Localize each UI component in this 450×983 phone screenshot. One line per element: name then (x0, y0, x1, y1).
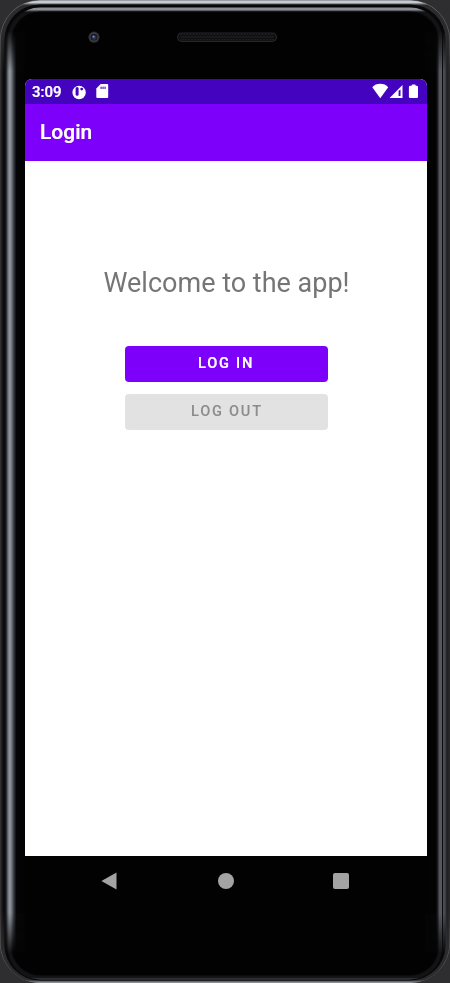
button[interactable]: Home (198, 857, 254, 905)
staticText: Login (40, 120, 93, 145)
staticText: LOG OUT (191, 402, 263, 419)
button[interactable]: LOG OUT (125, 394, 328, 430)
button[interactable]: Recent apps (313, 857, 369, 905)
staticText: Welcome to the app! (103, 267, 350, 299)
button[interactable]: Back (84, 857, 140, 905)
staticText: 3:09 (32, 83, 62, 101)
button[interactable]: LOG IN (125, 346, 328, 382)
staticText: LOG IN (198, 354, 255, 371)
